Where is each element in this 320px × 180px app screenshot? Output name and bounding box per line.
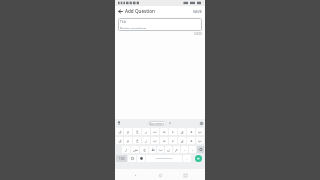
staticText: 0/200 <box>194 32 202 36</box>
button[interactable]: ی <box>178 137 186 144</box>
button[interactable]: م <box>173 146 180 153</box>
button[interactable]: ت <box>151 137 159 144</box>
button[interactable]: ی <box>178 128 186 135</box>
button[interactable]: پ <box>196 137 204 144</box>
staticText: ق <box>118 138 122 143</box>
button[interactable]: ?123 <box>116 155 127 162</box>
button[interactable]: Back <box>130 170 140 180</box>
button[interactable]: ر <box>142 137 150 144</box>
button[interactable]: ش <box>131 146 139 153</box>
button[interactable]: ت <box>151 128 159 135</box>
button[interactable]: و <box>124 137 132 144</box>
button[interactable]: ر <box>142 128 150 135</box>
staticText: ق <box>118 129 122 134</box>
staticText: ب <box>159 147 163 152</box>
staticText: ۔ <box>191 147 194 152</box>
button[interactable]: Title <box>118 18 202 31</box>
button[interactable]: ع <box>133 128 141 135</box>
button[interactable]: Settings <box>197 119 205 127</box>
button[interactable]: ۔ <box>189 146 196 153</box>
button[interactable]: ے <box>160 137 168 144</box>
staticText: SAVE <box>193 9 202 14</box>
staticText: Enter question <box>120 26 147 29</box>
staticText: ز <box>125 147 127 152</box>
button[interactable]: ، <box>181 146 188 153</box>
staticText: ع <box>136 129 139 134</box>
button[interactable]: Stop correct <box>147 121 166 126</box>
staticText: ے <box>163 138 166 143</box>
button[interactable]: Voice input <box>115 119 123 127</box>
button[interactable]: ع <box>133 137 141 144</box>
button[interactable]: Home <box>155 170 165 180</box>
staticText: ط <box>151 147 155 152</box>
button[interactable]: Change language <box>137 155 145 162</box>
staticText: چ <box>143 147 146 152</box>
button[interactable]: چ <box>140 146 148 153</box>
staticText: ے <box>163 129 166 134</box>
staticText: ہ <box>190 138 193 143</box>
staticText: Title <box>120 20 127 24</box>
staticText: ء <box>172 138 174 143</box>
button[interactable]: Backspace <box>197 146 204 153</box>
staticText: ش <box>133 147 138 152</box>
button[interactable]: Back <box>115 6 125 16</box>
staticText: Add Question <box>125 8 155 14</box>
button[interactable]: ء <box>169 128 177 135</box>
button[interactable]: More <box>168 121 172 125</box>
button[interactable]: Recents <box>180 170 190 180</box>
staticText: پ <box>198 129 202 134</box>
button[interactable]: Space <box>146 155 182 162</box>
staticText: ع <box>136 138 139 143</box>
staticText: ہ <box>190 129 193 134</box>
staticText: ن <box>167 147 170 152</box>
staticText: ?123 <box>119 157 125 161</box>
button[interactable]: ہ <box>187 137 195 144</box>
staticText: ۔ <box>186 157 188 161</box>
button[interactable]: ق <box>116 128 123 135</box>
staticText: و <box>127 129 129 134</box>
button[interactable]: پ <box>196 128 204 135</box>
button[interactable]: Emoji <box>128 155 136 162</box>
button[interactable]: ے <box>160 128 168 135</box>
button[interactable]: Enter <box>192 155 204 162</box>
button[interactable]: ن <box>165 146 172 153</box>
staticText: و <box>127 138 129 143</box>
staticText: ت <box>153 129 157 134</box>
button[interactable]: ط <box>149 146 156 153</box>
staticText: ر <box>145 129 147 134</box>
button[interactable]: ہ <box>187 128 195 135</box>
staticText: پ <box>198 138 202 143</box>
staticText: ت <box>153 138 157 143</box>
button[interactable]: ق <box>116 137 123 144</box>
staticText: Stop correct <box>149 122 164 126</box>
button[interactable]: ء <box>169 137 177 144</box>
staticText: ی <box>180 129 184 134</box>
staticText: ر <box>145 138 147 143</box>
button[interactable]: ز <box>122 146 130 153</box>
staticText: ء <box>172 129 174 134</box>
button[interactable]: و <box>124 128 132 135</box>
button[interactable]: ب <box>157 146 164 153</box>
staticText: ، <box>184 147 186 152</box>
staticText: م <box>175 147 178 152</box>
staticText: ی <box>180 138 184 143</box>
button[interactable]: SAVE <box>193 9 202 14</box>
